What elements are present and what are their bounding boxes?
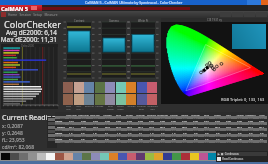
staticText: 1,9: [227, 131, 231, 134]
staticText: cd/m²: 82,068: [2, 144, 35, 151]
staticText: 0,33: [81, 140, 86, 143]
staticText: x: 0,2087: [2, 123, 23, 130]
staticText: 0,34: [171, 134, 176, 137]
staticText: 4,2: [139, 137, 143, 140]
staticText: 1,2: [69, 131, 73, 134]
staticText: 0,35: [226, 134, 231, 137]
button[interactable]: White Pt: [125, 19, 161, 79]
staticText: Bluish Green: [115, 105, 126, 111]
staticText: Blue Flower: [113, 113, 124, 116]
staticText: Measured x,y: [55, 122, 65, 125]
button[interactable]: [208, 153, 217, 160]
staticText: 0,38: [69, 134, 74, 137]
staticText: ColorChecker: [4, 18, 61, 30]
staticText: Target Delta: [55, 131, 65, 134]
staticText: 0,37: [105, 116, 110, 119]
staticText: 4,4: [238, 122, 242, 125]
staticText: 0,35: [215, 116, 220, 119]
staticText: 6,3: [150, 137, 154, 140]
staticText: Gray Bal: [55, 134, 65, 137]
staticText: 3,3: [194, 131, 198, 134]
staticText: Blue: [204, 113, 209, 116]
staticText: 0,43: [127, 119, 132, 122]
button[interactable]: Gamma: [96, 19, 132, 79]
staticText: Moderate Red: [147, 105, 158, 111]
staticText: 24,1: [69, 125, 74, 128]
staticText: 7,3: [194, 122, 198, 125]
staticText: Purplish Blue: [136, 105, 147, 111]
staticText: 38,5: [182, 125, 187, 128]
staticText: 6,4: [172, 122, 176, 125]
staticText: 0,42: [182, 119, 187, 122]
staticText: 4,6: [93, 137, 97, 140]
staticText: 0,40: [127, 128, 132, 131]
staticText: 0,38: [127, 116, 132, 119]
staticText: Purplish Blue: [146, 113, 157, 116]
staticText: y: 0,2648: [2, 130, 23, 137]
staticText: 0,29: [116, 119, 121, 122]
staticText: 3,4: [128, 137, 132, 140]
staticText: 4,1: [260, 137, 264, 140]
staticText: 0,45: [248, 116, 253, 119]
staticText: Cyan: [259, 113, 265, 116]
staticText: 12,4: [171, 125, 176, 128]
staticText: 0,45: [105, 119, 110, 122]
staticText: Purple: [170, 113, 178, 116]
button[interactable]: ▶ ■ Continuous: [216, 151, 268, 162]
staticText: 5,2: [69, 137, 73, 140]
staticText: 8,2: [249, 122, 253, 125]
staticText: 0,39: [259, 119, 264, 122]
button[interactable]: Contrast: [61, 19, 97, 79]
staticText: Light Skin: [78, 113, 89, 116]
